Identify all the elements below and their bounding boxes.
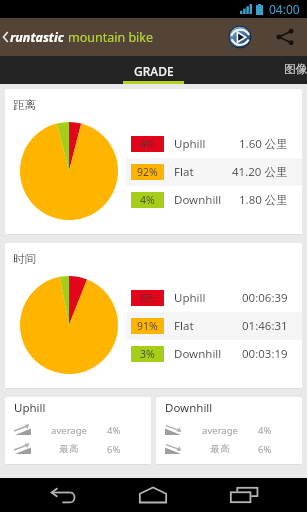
button[interactable]: Downhill bbox=[156, 397, 302, 465]
staticText: average bbox=[31, 424, 107, 437]
staticText: mountain bike bbox=[68, 29, 154, 46]
staticText: 4% bbox=[258, 424, 272, 437]
staticText: Flat bbox=[174, 164, 194, 180]
staticText: Downhill bbox=[174, 192, 222, 208]
staticText: 91% bbox=[137, 319, 158, 333]
staticText: 3% bbox=[140, 347, 155, 361]
staticText: 6% bbox=[140, 291, 155, 305]
staticText: Uphill bbox=[174, 136, 206, 152]
button[interactable]: Home bbox=[131, 478, 175, 512]
staticText: 最高 bbox=[182, 443, 258, 455]
staticText: 4% bbox=[140, 137, 155, 151]
button[interactable]: 4% bbox=[126, 186, 302, 214]
staticText: runtastic bbox=[10, 29, 64, 46]
staticText: 4% bbox=[107, 424, 121, 437]
staticText: average bbox=[182, 424, 258, 437]
staticText: 6% bbox=[258, 443, 272, 456]
staticText: 92% bbox=[137, 165, 158, 179]
staticText: 1.60 公里 bbox=[239, 136, 288, 152]
staticText: 00:03:19 bbox=[242, 346, 288, 362]
button[interactable]: Uphill bbox=[5, 397, 151, 465]
button[interactable]: Back bbox=[0, 18, 10, 56]
staticText: Uphill bbox=[14, 400, 46, 416]
button[interactable]: GRADE bbox=[123, 56, 184, 84]
button[interactable]: 3% bbox=[126, 340, 302, 368]
staticText: 41.20 公里 bbox=[232, 164, 288, 180]
staticText: Downhill bbox=[165, 400, 213, 416]
staticText: 4% bbox=[140, 193, 155, 207]
staticText: GRADE bbox=[134, 63, 174, 79]
button[interactable]: Share bbox=[272, 18, 298, 56]
staticText: 距离 bbox=[13, 98, 36, 112]
button[interactable]: Recents bbox=[222, 478, 266, 512]
button[interactable]: 6% bbox=[126, 284, 302, 312]
staticText: 时间 bbox=[13, 252, 36, 266]
button[interactable]: 距离 bbox=[5, 89, 302, 235]
staticText: 最高 bbox=[31, 443, 107, 455]
staticText: 01:46:31 bbox=[242, 318, 288, 334]
button[interactable]: Map bbox=[229, 18, 251, 56]
staticText: 1.80 公里 bbox=[239, 192, 288, 208]
staticText: Flat bbox=[174, 318, 194, 334]
button[interactable]: Back bbox=[42, 478, 86, 512]
button[interactable]: 91% bbox=[126, 312, 302, 340]
staticText: 04:00 bbox=[269, 1, 300, 17]
button[interactable]: 4% bbox=[126, 130, 302, 158]
staticText: 00:06:39 bbox=[242, 290, 288, 306]
staticText: Downhill bbox=[174, 346, 222, 362]
staticText: Uphill bbox=[174, 290, 206, 306]
button[interactable]: 图像 bbox=[270, 56, 307, 84]
staticText: 图像 bbox=[284, 62, 307, 76]
staticText: 6% bbox=[107, 443, 121, 456]
button[interactable]: 时间 bbox=[5, 243, 302, 389]
button[interactable]: 92% bbox=[126, 158, 302, 186]
